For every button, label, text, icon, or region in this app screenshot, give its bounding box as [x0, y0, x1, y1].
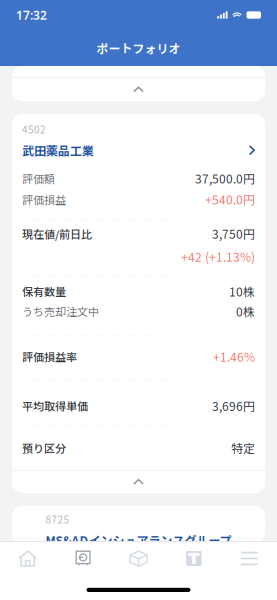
- button[interactable]: ホーム: [0, 542, 55, 575]
- button[interactable]: 4502: [12, 114, 265, 168]
- staticText: ポートフォリオ: [96, 39, 180, 57]
- staticText: 17:32: [16, 7, 47, 23]
- staticText: 平均取得単価: [22, 398, 88, 414]
- staticText: +540.0円: [205, 191, 255, 208]
- staticText: うち売却注文中: [22, 303, 99, 319]
- button[interactable]: 入出金: [55, 542, 111, 575]
- staticText: 評価損益: [22, 191, 66, 207]
- staticText: 現在値/前日比: [22, 225, 92, 241]
- staticText: 0株: [236, 303, 255, 320]
- button[interactable]: 投資情報: [166, 542, 222, 575]
- button[interactable]: 折りたたむ: [12, 471, 265, 493]
- staticText: 特定: [231, 439, 255, 457]
- button[interactable]: 折りたたむ: [12, 66, 265, 101]
- staticText: 8725: [45, 512, 69, 526]
- staticText: 37,500.0円: [195, 170, 255, 187]
- button[interactable]: 商品: [111, 542, 166, 575]
- staticText: +1.46%: [213, 348, 255, 365]
- staticText: MS&ADインシュアランスグループ: [45, 531, 231, 549]
- button[interactable]: メニュー: [222, 542, 277, 575]
- button[interactable]: 8725 MS&ADインシュアランスグループ: [12, 506, 265, 543]
- staticText: 保有数量: [22, 283, 66, 299]
- staticText: 評価損益率: [22, 348, 77, 364]
- staticText: 評価額: [22, 170, 55, 186]
- staticText: +42 (+1.13%): [181, 248, 255, 265]
- staticText: 4502: [22, 122, 46, 136]
- staticText: 3,750円: [212, 225, 255, 242]
- staticText: 10株: [229, 283, 255, 300]
- staticText: 3,696円: [212, 397, 255, 414]
- staticText: 武田薬品工業: [22, 141, 94, 159]
- staticText: 預り区分: [22, 440, 66, 456]
